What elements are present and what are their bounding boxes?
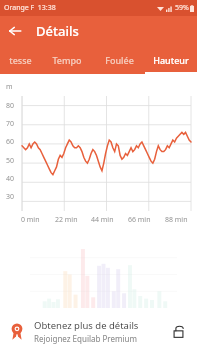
- button[interactable]: Obtenez plus de détails: [0, 312, 197, 350]
- staticText: 30: [6, 192, 15, 202]
- staticText: 44 min: [91, 215, 114, 225]
- staticText: 80: [6, 101, 15, 111]
- staticText: 50: [6, 156, 15, 166]
- button[interactable]: Unlock premium: [167, 320, 189, 342]
- staticText: Orange F 13:38: [4, 3, 56, 13]
- staticText: Rejoignez Equilab Premium: [34, 333, 137, 344]
- staticText: 88 min: [165, 215, 188, 225]
- staticText: 0 min: [21, 215, 40, 225]
- staticText: m: [6, 82, 13, 92]
- button[interactable]: Tempo: [41, 46, 93, 74]
- staticText: 59%: [175, 3, 189, 13]
- staticText: Tempo: [52, 54, 82, 66]
- staticText: Détails: [36, 22, 79, 40]
- staticText: 60: [6, 137, 15, 147]
- staticText: 22 min: [55, 215, 78, 225]
- staticText: tesse: [9, 54, 32, 66]
- staticText: Obtenez plus de détails: [34, 319, 139, 332]
- staticText: 66 min: [128, 215, 151, 225]
- button[interactable]: Foulée: [93, 46, 145, 74]
- staticText: 40: [6, 174, 15, 184]
- button[interactable]: Back: [0, 16, 30, 46]
- staticText: Hauteur: [153, 54, 189, 66]
- staticText: Foulée: [105, 54, 134, 66]
- button[interactable]: tesse: [0, 46, 41, 74]
- staticText: 70: [6, 119, 15, 129]
- button[interactable]: Hauteur: [145, 46, 197, 74]
